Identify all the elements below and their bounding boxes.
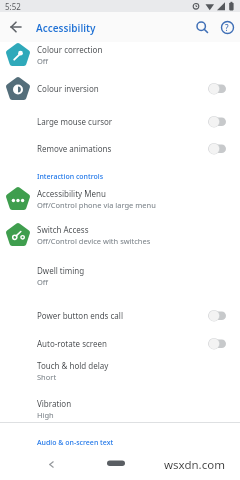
staticText: wsxdn.com	[164, 457, 225, 473]
button[interactable]	[195, 20, 209, 34]
button[interactable]: Auto-rotate screen	[0, 330, 240, 356]
button[interactable]: Colour inversion	[0, 73, 240, 104]
staticText: Vibration	[37, 398, 72, 409]
button[interactable]: Colour correction	[0, 39, 240, 70]
staticText: Accessibility	[36, 21, 96, 35]
button[interactable]	[8, 19, 24, 35]
staticText: ?	[225, 22, 229, 33]
staticText: High	[37, 410, 54, 420]
button[interactable]	[107, 460, 125, 466]
staticText: Remove animations	[37, 143, 112, 154]
staticText: Interaction controls	[37, 172, 104, 182]
staticText: Touch & hold delay	[37, 360, 109, 371]
staticText: Auto-rotate screen	[37, 338, 107, 349]
button[interactable]: Dwell timing	[0, 262, 240, 290]
staticText: 5:52	[5, 1, 21, 12]
button[interactable]: Interaction controls	[37, 172, 104, 182]
button[interactable]: Vibration	[0, 394, 240, 424]
staticText: Colour inversion	[37, 83, 99, 94]
staticText: Switch Access	[37, 224, 89, 235]
button[interactable]: Power button ends call	[0, 302, 240, 328]
staticText: Power button ends call	[37, 310, 123, 321]
staticText: Off/Control phone via large menu	[37, 200, 156, 210]
staticText: Off	[37, 277, 49, 287]
button[interactable]: Switch Access	[0, 216, 240, 254]
staticText: Off	[37, 56, 49, 66]
button[interactable]: Large mouse cursor	[0, 107, 240, 135]
button[interactable]: Accessibility Menu	[0, 180, 240, 218]
button[interactable]: Remove animations	[0, 135, 240, 162]
button[interactable]	[45, 458, 58, 471]
button[interactable]: Touch & hold delay	[0, 356, 240, 386]
staticText: Off/Control device with switches	[37, 236, 151, 246]
staticText: Accessibility Menu	[37, 188, 106, 199]
staticText: Dwell timing	[37, 265, 85, 276]
button[interactable]: Audio & on-screen text	[37, 438, 114, 448]
staticText: Audio & on-screen text	[37, 438, 114, 448]
staticText: Colour correction	[37, 44, 103, 55]
staticText: Large mouse cursor	[37, 116, 113, 127]
staticText: Short	[37, 372, 57, 382]
button[interactable]: ?	[220, 20, 234, 34]
